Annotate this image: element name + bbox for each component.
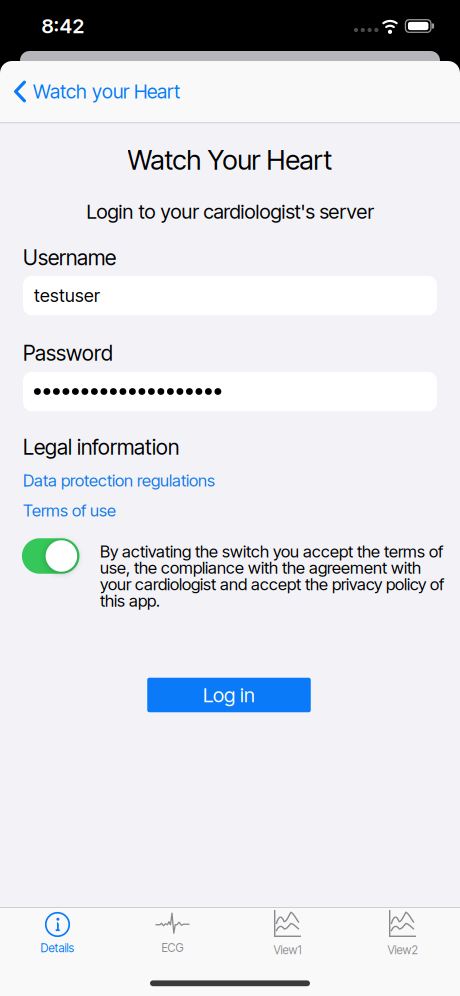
- staticText: View1: [273, 943, 301, 957]
- staticText: Log in: [203, 683, 255, 707]
- button[interactable]: Details: [0, 912, 115, 955]
- staticText: testuser: [34, 285, 100, 306]
- button[interactable]: Data protection regulations: [23, 470, 215, 491]
- staticText: ECG: [161, 941, 183, 955]
- button[interactable]: Accept terms: [22, 538, 79, 574]
- staticText: By activating the switch you accept the …: [100, 541, 443, 561]
- button[interactable]: Log in: [147, 678, 311, 712]
- staticText: Details: [40, 941, 74, 955]
- staticText: Watch your Heart: [33, 80, 180, 103]
- staticText: Password: [23, 340, 113, 366]
- button[interactable]: View1: [230, 910, 345, 957]
- staticText: Legal information: [23, 434, 179, 460]
- staticText: this app.: [100, 591, 160, 611]
- button[interactable]: View2: [345, 910, 460, 957]
- staticText: your cardiologist and accept the privacy…: [100, 574, 444, 594]
- staticText: use, the compliance with the agreement w…: [100, 558, 421, 578]
- button[interactable]: Watch your Heart: [0, 80, 180, 103]
- staticText: 8:42: [41, 14, 84, 38]
- staticText: Watch Your Heart: [127, 144, 332, 176]
- staticText: Terms of use: [23, 500, 116, 521]
- button[interactable]: ECG: [115, 912, 230, 955]
- button[interactable]: Terms of use: [23, 500, 116, 521]
- staticText: Login to your cardiologist's server: [86, 199, 373, 223]
- staticText: Username: [23, 245, 116, 270]
- staticText: Data protection regulations: [23, 470, 215, 491]
- staticText: View2: [387, 943, 417, 957]
